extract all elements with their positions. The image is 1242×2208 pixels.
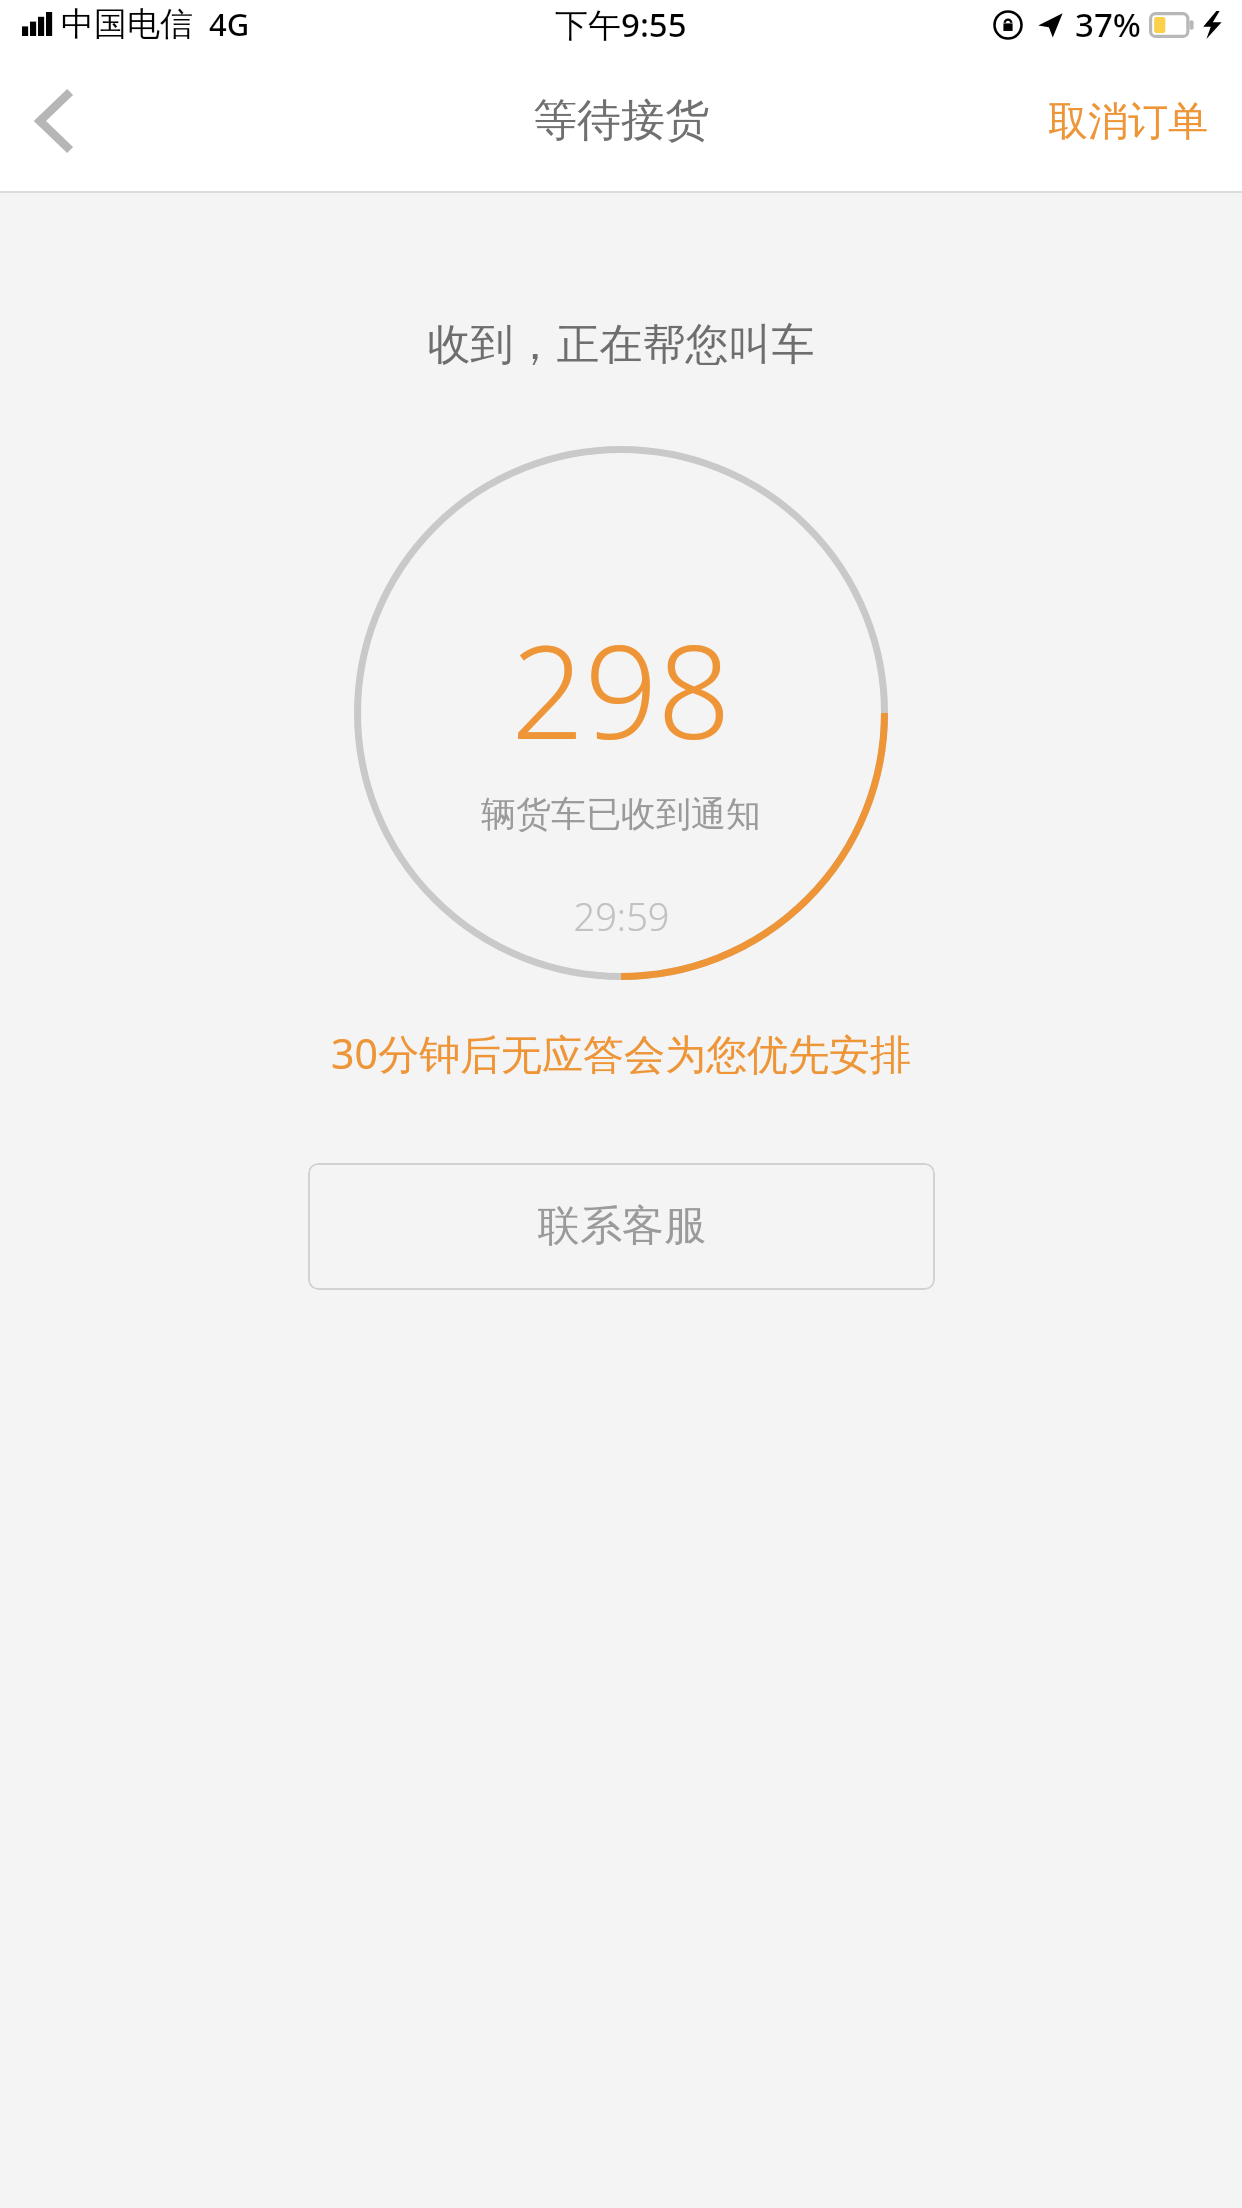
staticText: 4G <box>209 3 250 45</box>
staticText: 30分钟后无应答会为您优先安排 <box>0 1025 1242 1081</box>
button[interactable]: 取消订单 <box>1022 74 1234 168</box>
staticText: 辆货车已收到通知 <box>481 792 761 836</box>
staticText: 298 <box>511 602 731 776</box>
staticText: 等待接货 <box>533 93 709 148</box>
staticText: 收到，正在帮您叫车 <box>0 318 1242 372</box>
button[interactable]: 联系客服 <box>308 1163 935 1290</box>
staticText: 29:59 <box>573 890 670 942</box>
staticText: 中国电信 <box>61 3 193 45</box>
staticText: 联系客服 <box>538 1200 706 1253</box>
staticText: 下午9:55 <box>555 2 687 47</box>
button[interactable]: Back <box>0 66 110 176</box>
staticText: 取消订单 <box>1048 96 1208 146</box>
staticText: 37% <box>1075 2 1141 47</box>
